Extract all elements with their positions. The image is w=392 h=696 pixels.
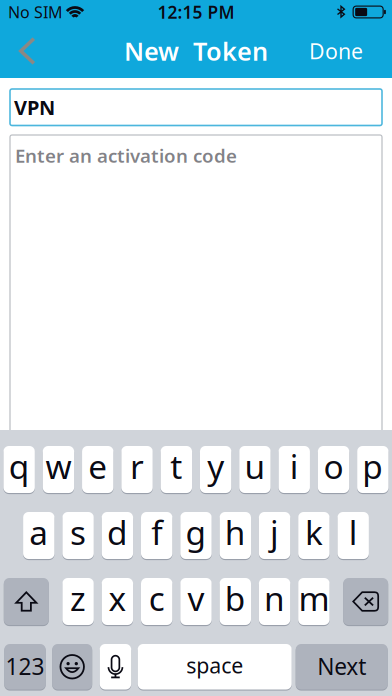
staticText: k [305,510,323,554]
staticText: r [130,444,144,488]
button[interactable]: z [62,578,94,625]
button[interactable]: a [23,512,54,559]
staticText: x [108,576,126,620]
button[interactable]: VPN [0,89,392,125]
button[interactable]: b [220,578,251,625]
button[interactable]: s [62,512,94,559]
staticText: New Token [124,34,268,68]
button[interactable]: r [121,446,153,493]
button[interactable]: Back [0,25,49,77]
staticText: h [225,510,246,554]
staticText: w [45,444,71,488]
staticText: i [290,444,299,488]
button[interactable]: x [102,578,133,625]
staticText: o [324,444,344,488]
staticText: s [70,510,86,554]
staticText: Next [317,651,366,681]
staticText: Enter an activation code [15,143,237,168]
button[interactable]: q [3,446,35,493]
button[interactable]: o [318,446,349,493]
staticText: g [185,510,206,554]
button[interactable]: y [200,446,231,493]
staticText: e [88,444,107,488]
staticText: m [298,576,329,620]
staticText: n [264,576,285,620]
button[interactable]: h [220,512,251,559]
button[interactable]: w [43,446,74,493]
button[interactable]: Enter an activation code [0,135,392,455]
staticText: d [107,510,128,554]
button[interactable]: Dictation [100,644,131,689]
button[interactable]: m [298,578,330,625]
button[interactable]: d [102,512,133,559]
button[interactable]: u [239,446,271,493]
button[interactable]: space [138,644,292,689]
button[interactable]: c [141,578,172,625]
staticText: t [170,444,182,488]
staticText: No SIM [8,1,63,23]
button[interactable]: p [357,446,389,493]
staticText: c [149,576,165,620]
button[interactable]: t [161,446,192,493]
button[interactable]: v [180,578,212,625]
staticText: y [207,444,224,488]
button[interactable]: g [180,512,212,559]
staticText: v [187,576,204,620]
staticText: b [225,576,246,620]
staticText: VPN [14,94,55,121]
button[interactable]: i [279,446,310,493]
button[interactable]: e [82,446,113,493]
staticText: a [29,510,48,554]
button[interactable]: Shift [4,578,49,625]
staticText: Done [309,37,363,65]
button[interactable]: Next [296,644,388,689]
button[interactable]: l [337,512,369,559]
staticText: 12:15 PM [157,0,234,23]
staticText: u [244,444,265,488]
button[interactable]: Delete [343,578,388,625]
staticText: l [349,510,358,554]
button[interactable]: Emoji [52,644,92,689]
staticText: 123 [5,651,44,681]
button[interactable]: Done [295,25,392,77]
button[interactable]: f [141,512,172,559]
staticText: z [70,576,86,620]
staticText: f [151,510,162,554]
staticText: j [270,510,279,554]
staticText: q [9,444,30,488]
staticText: space [186,651,243,679]
staticText: p [362,444,383,488]
button[interactable]: n [259,578,290,625]
button[interactable]: j [259,512,290,559]
button[interactable]: k [298,512,330,559]
button[interactable]: 123 [4,644,46,689]
